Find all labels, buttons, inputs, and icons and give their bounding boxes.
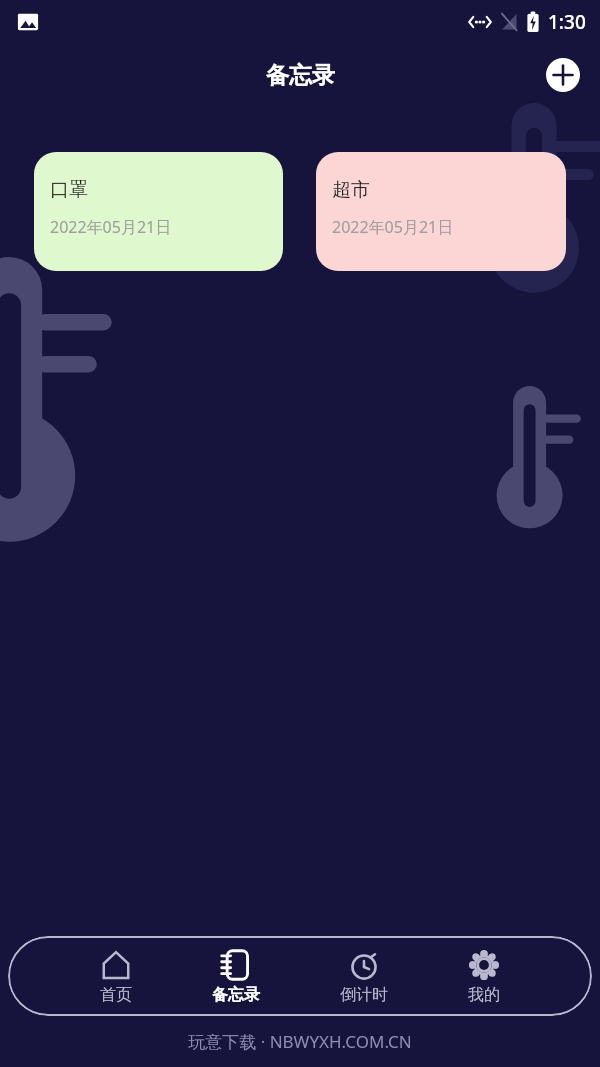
button[interactable]: 倒计时 bbox=[340, 940, 388, 1013]
staticText: 1:30 bbox=[548, 9, 586, 35]
button[interactable]: 口罩 bbox=[34, 152, 283, 271]
button[interactable]: 首页 bbox=[99, 940, 133, 1013]
staticText: 首页 bbox=[100, 985, 132, 1005]
staticText: 倒计时 bbox=[340, 985, 388, 1005]
button[interactable]: Add note bbox=[546, 58, 580, 92]
staticText: 口罩 bbox=[50, 178, 88, 202]
button[interactable]: 备忘录 bbox=[212, 940, 260, 1013]
staticText: 备忘录 bbox=[212, 985, 260, 1005]
staticText: 2022年05月21日 bbox=[332, 216, 454, 238]
staticText: 玩意下载 · NBWYXH.COM.CN bbox=[0, 1030, 600, 1053]
staticText: 超市 bbox=[332, 178, 370, 202]
button[interactable]: 我的 bbox=[467, 940, 501, 1013]
staticText: 备忘录 bbox=[266, 61, 335, 90]
button[interactable]: 超市 bbox=[316, 152, 566, 271]
staticText: 我的 bbox=[468, 985, 500, 1005]
staticText: 2022年05月21日 bbox=[50, 216, 172, 238]
